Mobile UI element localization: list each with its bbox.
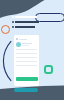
button[interactable] — [14, 88, 38, 92]
button[interactable] — [16, 77, 38, 81]
